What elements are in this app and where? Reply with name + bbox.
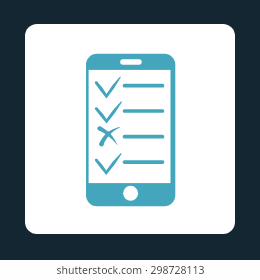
button[interactable]: shutterstock.com · 298728113: [0, 260, 260, 280]
button[interactable]: Mobile checklist: [25, 24, 235, 234]
staticText: shutterstock.com · 298728113: [56, 263, 205, 277]
